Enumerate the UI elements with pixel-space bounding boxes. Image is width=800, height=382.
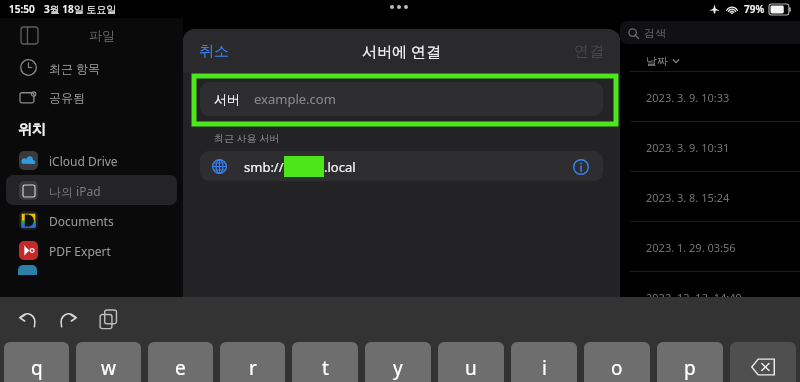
staticText: 2023. 1. 29. 03:56 xyxy=(646,240,736,255)
staticText: w xyxy=(101,355,116,381)
staticText: 연결 xyxy=(574,42,604,61)
button[interactable]: Documents xyxy=(6,205,177,235)
staticText: .local xyxy=(324,158,356,176)
staticText: t xyxy=(322,355,329,381)
button[interactable]: smb:// xyxy=(200,151,603,181)
staticText: iCloud Drive xyxy=(49,153,118,169)
staticText: 검색 xyxy=(644,26,666,40)
button[interactable]: u xyxy=(438,342,504,382)
staticText: 파일 xyxy=(89,27,115,43)
staticText: r xyxy=(249,355,257,381)
staticText: 나의 iPad xyxy=(49,183,101,199)
staticText: p xyxy=(684,355,696,381)
staticText: i xyxy=(542,355,547,381)
staticText: 최근 항목 xyxy=(49,60,101,76)
staticText: 79% xyxy=(744,2,765,16)
button[interactable]: 나의 iPad xyxy=(6,175,177,205)
button[interactable]: 서버 xyxy=(200,82,603,116)
button[interactable]: 정보 xyxy=(571,157,591,177)
button[interactable]: 취소 xyxy=(191,36,237,67)
button[interactable]: 공유됨 xyxy=(6,82,177,112)
staticText: 2023. 3. 9. 10:31 xyxy=(646,140,730,155)
button[interactable]: 2023. 3. 9. 10:33 xyxy=(620,73,800,121)
button[interactable]: 검색 xyxy=(620,21,800,44)
staticText: Documents xyxy=(49,213,114,229)
button[interactable]: i xyxy=(511,342,577,382)
staticText: 15:50 xyxy=(9,2,35,16)
button[interactable]: 실행 취소 xyxy=(14,305,42,333)
button[interactable]: 사이드바 xyxy=(18,24,40,46)
button[interactable]: 2023. 3. 9. 10:31 xyxy=(620,123,800,171)
staticText: example.com xyxy=(254,90,336,108)
staticText: 서버에 연결 xyxy=(362,41,441,61)
staticText: 위치 xyxy=(18,121,46,139)
button[interactable]: PDF Expert xyxy=(6,235,177,265)
button[interactable]: 지우기 xyxy=(730,342,796,382)
button[interactable]: 2023. 1. 29. 03:56 xyxy=(620,223,800,271)
staticText: 2022. 12. 13. 14:49 xyxy=(646,290,742,305)
staticText: e xyxy=(175,355,186,381)
button[interactable]: o xyxy=(584,342,650,382)
button[interactable]: 2023. 3. 8. 15:24 xyxy=(620,173,800,221)
staticText: 취소 xyxy=(199,42,229,61)
button[interactable]: q xyxy=(4,342,69,382)
button[interactable]: 다시 실행 xyxy=(54,305,82,333)
button[interactable]: 붙여넣기 xyxy=(94,305,122,333)
button[interactable]: iCloud Drive xyxy=(6,145,177,175)
button[interactable]: p xyxy=(657,342,723,382)
staticText: o xyxy=(611,355,623,381)
staticText: q xyxy=(31,355,43,381)
staticText: 서버 xyxy=(214,91,240,107)
button[interactable]: t xyxy=(292,342,358,382)
button[interactable]: e xyxy=(148,342,213,382)
staticText: y xyxy=(393,355,403,381)
staticText: u xyxy=(465,355,477,381)
staticText: smb:// xyxy=(244,158,284,176)
staticText: 2023. 3. 9. 10:33 xyxy=(646,90,730,105)
staticText: 날짜 xyxy=(646,54,668,68)
staticText: PDF Expert xyxy=(49,243,111,259)
staticText: 2023. 3. 8. 15:24 xyxy=(646,190,730,205)
staticText: 공유됨 xyxy=(49,90,85,105)
button[interactable]: w xyxy=(76,342,141,382)
staticText: 최근 사용 서버 xyxy=(214,131,280,145)
button[interactable]: 2022. 12. 13. 14:49 xyxy=(620,273,800,321)
button[interactable]: r xyxy=(220,342,285,382)
button[interactable]: 최근 항목 xyxy=(6,52,177,82)
button[interactable]: 연결 xyxy=(566,36,612,67)
button[interactable]: y xyxy=(365,342,431,382)
staticText: 3월 18일 토요일 xyxy=(44,2,117,16)
